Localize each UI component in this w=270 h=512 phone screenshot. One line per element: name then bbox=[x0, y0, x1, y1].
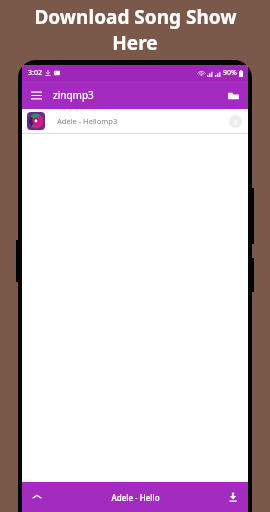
button[interactable]: Download bbox=[224, 488, 242, 506]
staticText: Download Song Show bbox=[34, 4, 237, 30]
staticText: 3:02 bbox=[28, 68, 42, 78]
staticText: 90% bbox=[223, 68, 237, 78]
button[interactable]: Adele - Hellomp3 bbox=[22, 109, 248, 133]
staticText: Adele - Hellomp3 bbox=[57, 116, 229, 126]
staticText: zinqmp3 bbox=[53, 88, 94, 102]
button[interactable]: Menu bbox=[26, 85, 46, 105]
staticText: Adele - Hello bbox=[111, 492, 160, 503]
button[interactable]: Expand bbox=[28, 488, 46, 506]
staticText: Here bbox=[112, 30, 158, 56]
button[interactable]: Play bbox=[229, 115, 242, 128]
button[interactable]: Expand bbox=[22, 482, 248, 512]
button[interactable]: Folder bbox=[223, 85, 243, 105]
